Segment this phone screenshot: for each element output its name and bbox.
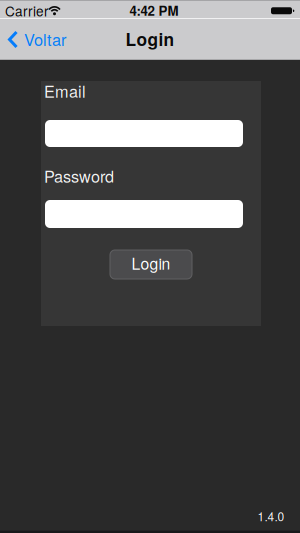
button[interactable]: Voltar [7, 19, 66, 59]
staticText: Password [44, 164, 114, 187]
staticText: Login [131, 252, 170, 274]
button[interactable]: Email [45, 120, 243, 147]
button[interactable]: Password [45, 200, 243, 228]
button[interactable]: Login [110, 250, 192, 279]
staticText: Voltar [24, 27, 66, 51]
staticText: 1.4.0 [257, 507, 284, 525]
staticText: 4:42 PM [129, 1, 178, 20]
staticText: Email [44, 79, 86, 102]
staticText: Login [125, 26, 174, 51]
staticText: Carrier [5, 1, 49, 20]
